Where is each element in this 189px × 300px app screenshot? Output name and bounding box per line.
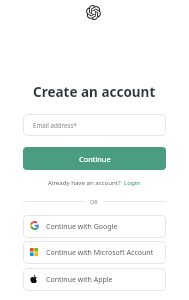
staticText: Continue — [79, 154, 111, 164]
button[interactable]: Continue with Google — [23, 215, 166, 238]
button[interactable]: Login — [124, 178, 140, 186]
staticText: Continue with Google — [46, 222, 118, 232]
button[interactable]: Continue — [23, 147, 166, 170]
staticText: Create an account — [33, 83, 156, 101]
other: OpenAI — [86, 5, 101, 20]
button[interactable]: Email address* — [23, 114, 166, 136]
button[interactable]: Continue with Microsoft Account — [23, 241, 166, 264]
staticText: OR — [90, 198, 98, 205]
staticText: Email address* — [33, 121, 77, 129]
button[interactable]: Continue with Apple — [23, 268, 166, 291]
staticText: Continue with Apple — [46, 275, 113, 285]
staticText: Already have an account? — [48, 178, 121, 186]
staticText: Continue with Microsoft Account — [46, 248, 154, 258]
